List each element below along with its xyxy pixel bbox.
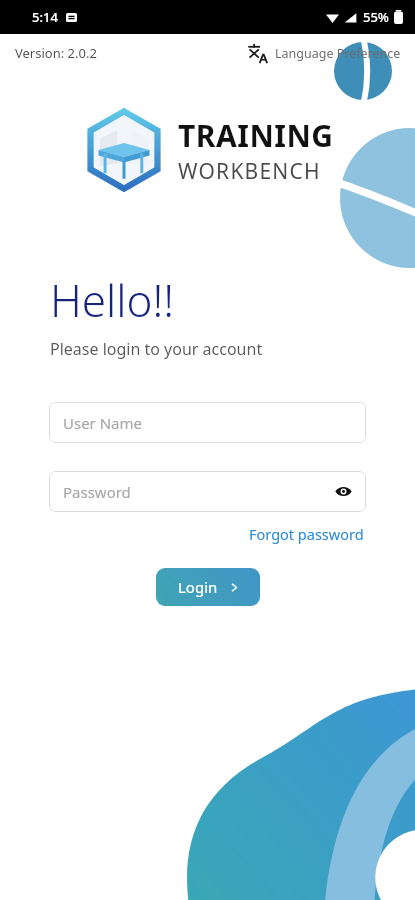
button[interactable]: Forgot password bbox=[247, 522, 366, 546]
staticText: Hello!! bbox=[50, 270, 175, 330]
staticText: 5:14 bbox=[32, 8, 58, 26]
staticText: 55% bbox=[363, 8, 389, 26]
button[interactable]: Show password bbox=[329, 477, 358, 506]
staticText: Forgot password bbox=[249, 524, 364, 544]
staticText: User Name bbox=[63, 413, 143, 433]
staticText: Login bbox=[178, 577, 218, 597]
staticText: Language Preference bbox=[275, 45, 401, 62]
button[interactable]: User Name bbox=[49, 402, 366, 443]
staticText: Password bbox=[63, 482, 131, 502]
button[interactable]: Password bbox=[49, 471, 366, 512]
staticText: Version: 2.0.2 bbox=[15, 44, 97, 62]
button[interactable]: Login bbox=[156, 568, 260, 606]
staticText: WORKBENCH bbox=[178, 157, 321, 186]
staticText: Please login to your account bbox=[50, 338, 263, 360]
staticText: TRAINING bbox=[178, 115, 334, 156]
other: Language Preference bbox=[247, 43, 268, 64]
button[interactable]: Language Preference bbox=[243, 39, 405, 68]
